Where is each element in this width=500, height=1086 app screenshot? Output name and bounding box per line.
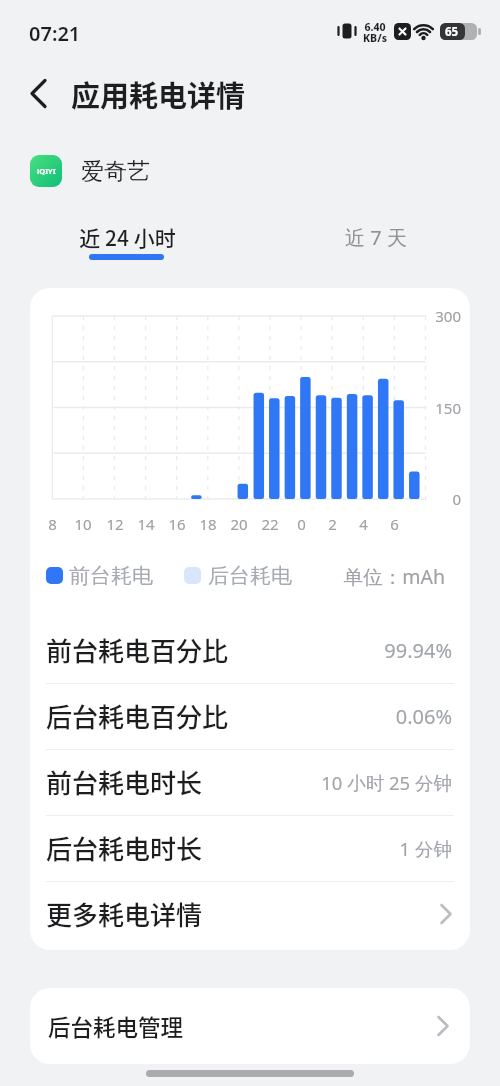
staticText: 后台耗电百分比 [46, 697, 229, 735]
staticText: 0.06% [395, 703, 452, 730]
staticText: 20 [230, 514, 248, 534]
staticText: KB/s [363, 31, 387, 45]
button[interactable] [34, 683, 466, 749]
staticText: 14 [137, 514, 155, 534]
staticText: 6 [390, 514, 399, 534]
staticText: 单位：mAh [343, 563, 445, 590]
staticText: 99.94% [384, 637, 452, 664]
staticText: 300 [435, 306, 461, 326]
staticText: 后台耗电 [208, 563, 292, 589]
staticText: 4 [359, 514, 368, 534]
staticText: 6.40 [364, 20, 386, 34]
staticText: 近 24 小时 [79, 222, 176, 252]
staticText: 前台耗电百分比 [46, 631, 229, 669]
staticText: 应用耗电详情 [71, 73, 246, 115]
button[interactable] [34, 749, 466, 815]
staticText: 16 [168, 514, 186, 534]
staticText: 10 小时 25 分钟 [321, 770, 452, 795]
staticText: 18 [199, 514, 217, 534]
button[interactable] [69, 216, 184, 266]
staticText: 后台耗电管理 [48, 1010, 184, 1043]
staticText: 前台耗电 [69, 563, 153, 589]
staticText: 65 [445, 24, 459, 40]
staticText: 10 [74, 514, 92, 534]
button[interactable] [34, 815, 466, 881]
staticText: 爱奇艺 [81, 157, 150, 186]
button[interactable] [330, 216, 425, 266]
staticText: iQIYI [37, 166, 56, 176]
staticText: 1 分钟 [399, 836, 452, 861]
button[interactable] [34, 617, 466, 683]
staticText: 8 [48, 514, 57, 534]
button[interactable] [34, 882, 466, 948]
staticText: 07:21 [29, 20, 81, 47]
staticText: 150 [435, 398, 461, 418]
staticText: 更多耗电详情 [46, 895, 203, 933]
staticText: 0 [297, 514, 306, 534]
button[interactable] [30, 988, 470, 1064]
button[interactable] [20, 76, 56, 112]
staticText: 近 7 天 [345, 224, 407, 251]
staticText: 22 [261, 514, 279, 534]
staticText: 后台耗电时长 [46, 829, 203, 867]
staticText: 12 [106, 514, 124, 534]
staticText: 2 [328, 514, 337, 534]
staticText: 0 [452, 489, 461, 509]
staticText: 前台耗电时长 [46, 763, 203, 801]
